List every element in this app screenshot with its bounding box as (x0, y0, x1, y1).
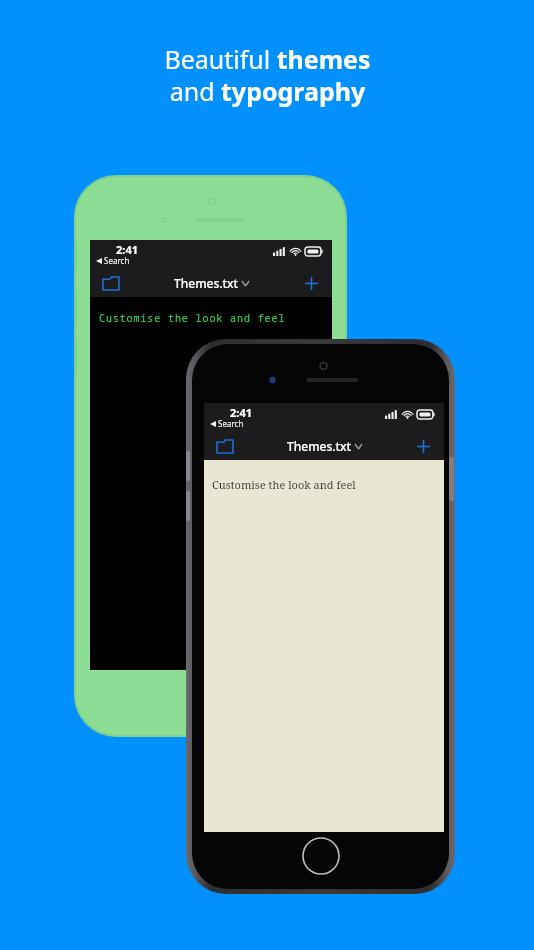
staticText: Search (104, 255, 130, 266)
button[interactable]: New document (298, 270, 324, 296)
staticText: Customise the look and feel (212, 477, 356, 492)
button[interactable]: Documents (98, 270, 124, 296)
staticText: 2:41 (230, 405, 252, 420)
button[interactable]: Themes.txt (174, 275, 249, 291)
button[interactable]: Documents (212, 433, 238, 459)
staticText: Themes.txt (174, 275, 239, 291)
staticText: Search (218, 418, 244, 429)
button[interactable]: New document (410, 433, 436, 459)
staticText: 2:41 (116, 242, 138, 257)
button[interactable]: Themes.txt (287, 438, 362, 454)
staticText: Themes.txt (287, 438, 352, 454)
staticText: Beautiful themes and typography (164, 42, 371, 108)
button[interactable]: Home (301, 836, 341, 876)
button[interactable]: Search (96, 255, 130, 266)
button[interactable]: Search (210, 418, 244, 429)
staticText: Customise the look and feel (99, 311, 286, 325)
